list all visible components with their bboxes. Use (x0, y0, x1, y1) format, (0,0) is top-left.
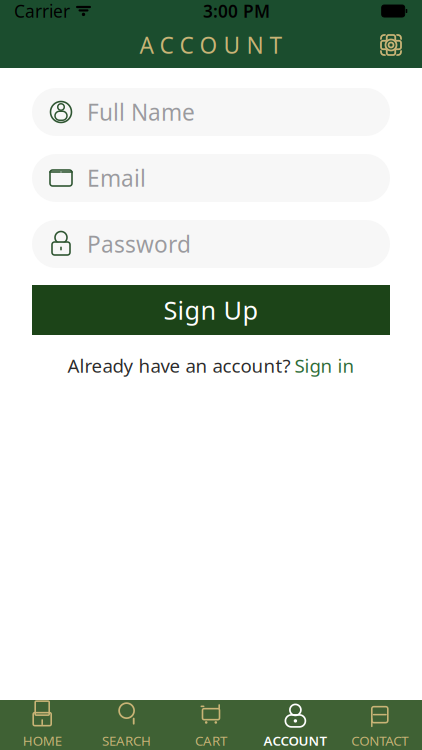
button[interactable]: Sign Up (32, 285, 390, 335)
button[interactable]: ACCOUNT (253, 697, 338, 750)
staticText: CART (195, 732, 227, 749)
staticText: Sign Up (163, 293, 258, 327)
staticText: SEARCH (102, 732, 151, 749)
staticText: HOME (23, 732, 62, 749)
staticText: Full Name (87, 97, 195, 127)
staticText: Already have an account? (67, 353, 290, 378)
button[interactable]: CART (169, 697, 253, 750)
button[interactable]: CONTACT (338, 697, 422, 750)
staticText: ACCOUNT (263, 732, 327, 749)
staticText: CONTACT (351, 732, 408, 749)
staticText: Carrier (14, 0, 70, 22)
staticText: Sign in (294, 353, 354, 378)
staticText: A C C O U N T (139, 30, 282, 60)
button[interactable]: SEARCH (84, 697, 169, 750)
button[interactable]: HOME (0, 697, 84, 750)
button[interactable]: Already have an account? (57, 347, 364, 384)
staticText: 3:00 PM (203, 0, 270, 22)
staticText: Password (87, 229, 191, 259)
button[interactable]: Settings (370, 26, 412, 64)
staticText: Email (87, 163, 146, 193)
